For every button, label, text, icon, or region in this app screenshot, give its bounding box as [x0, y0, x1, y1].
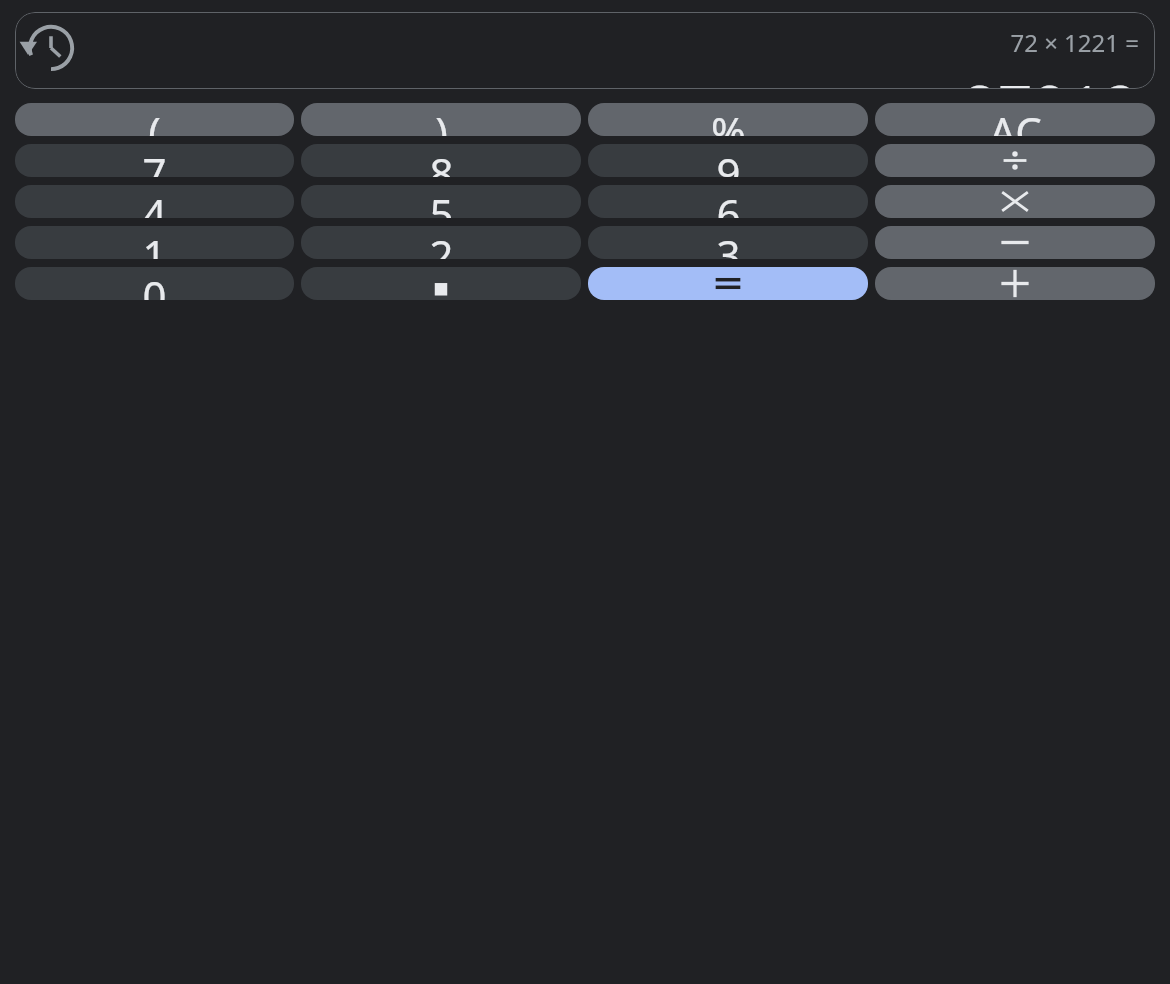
staticText: 5	[429, 185, 454, 218]
staticText: (	[148, 103, 161, 136]
button[interactable]: 7	[15, 144, 294, 177]
staticText: 3	[716, 226, 741, 259]
staticText: AC	[989, 103, 1042, 136]
staticText: 72 × 1221 =	[1010, 26, 1139, 59]
staticText: 87912	[961, 65, 1139, 89]
staticText: 0	[142, 267, 167, 300]
staticText: 1	[142, 226, 167, 259]
button[interactable]: )	[301, 103, 581, 136]
button[interactable]: %	[588, 103, 868, 136]
button[interactable]: 3	[588, 226, 868, 259]
button[interactable]: 5	[301, 185, 581, 218]
button[interactable]: Multiply	[875, 185, 1155, 218]
staticText: 8	[429, 144, 454, 177]
staticText: 7	[142, 144, 167, 177]
button[interactable]: AC	[875, 103, 1155, 136]
button[interactable]: 1	[15, 226, 294, 259]
button[interactable]: Decimal point	[301, 267, 581, 300]
button[interactable]: 4	[15, 185, 294, 218]
staticText: 9	[716, 144, 741, 177]
button[interactable]: Plus	[875, 267, 1155, 300]
button[interactable]: 6	[588, 185, 868, 218]
button[interactable]: 9	[588, 144, 868, 177]
staticText: 6	[716, 185, 741, 218]
button[interactable]: 2	[301, 226, 581, 259]
button[interactable]: History	[15, 12, 1155, 89]
button[interactable]: 8	[301, 144, 581, 177]
staticText: %	[711, 103, 746, 136]
button[interactable]: Divide	[875, 144, 1155, 177]
button[interactable]: Minus	[875, 226, 1155, 259]
button[interactable]: Equals	[588, 267, 868, 300]
staticText: 2	[429, 226, 454, 259]
staticText: 4	[142, 185, 167, 218]
staticText: )	[435, 103, 448, 136]
button[interactable]: (	[15, 103, 294, 136]
button[interactable]: 0	[15, 267, 294, 300]
other: History	[28, 25, 74, 71]
